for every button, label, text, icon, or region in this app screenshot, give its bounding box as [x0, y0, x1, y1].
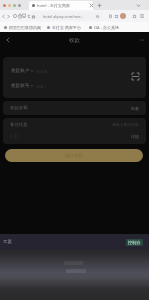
button[interactable]: 确认收款 [5, 149, 143, 162]
button[interactable]: Downloads [21, 13, 27, 19]
staticText: 元素 [3, 239, 12, 245]
staticText: 收款金额 [10, 105, 28, 111]
button[interactable]: Apps [131, 13, 137, 19]
staticText: 阿里巴巴集团内网 [9, 25, 41, 30]
staticText: 0.00 [10, 133, 19, 139]
button[interactable]: Tab list [136, 3, 141, 8]
button[interactable]: Extensions [113, 13, 119, 19]
staticText: * [30, 84, 33, 89]
button[interactable]: 备注信息 [3, 118, 146, 144]
staticText: 收款账户 [11, 68, 30, 74]
staticText: 请输入备注信息 [112, 122, 139, 127]
button[interactable]: Home [17, 13, 23, 19]
button[interactable]: Reload [12, 13, 18, 19]
staticText: 批量 [131, 106, 139, 111]
button[interactable]: More options [137, 35, 147, 45]
staticText: hotel.alipay.com/mer... [43, 14, 84, 19]
staticText: 控制台 [128, 240, 141, 245]
button[interactable]: hotel.alipay.com/mer... [30, 12, 102, 20]
staticText: 收款账号 [11, 83, 30, 89]
staticText: * [30, 69, 33, 74]
button[interactable]: OA - 办公系统 [87, 25, 121, 30]
staticText: 支付宝·商家平台 [52, 25, 82, 30]
button[interactable]: hotel - 支付宝商家 [29, 1, 93, 10]
staticText: 备注信息 [10, 122, 28, 128]
staticText: 请输入 [36, 84, 48, 89]
button[interactable]: Share [107, 13, 113, 19]
button[interactable]: 阿里巴巴集团内网 [2, 25, 43, 30]
staticText: 详情 [131, 134, 139, 139]
button[interactable]: 收款金额 [3, 101, 146, 115]
button[interactable]: Scan code [129, 70, 141, 82]
button[interactable]: Split view [26, 13, 32, 19]
button[interactable]: 控制台 [128, 240, 141, 245]
button[interactable]: Forward [5, 13, 11, 19]
staticText: 请选择 [36, 69, 48, 74]
button[interactable]: New tab [97, 3, 102, 8]
button[interactable]: Close tab [89, 3, 94, 8]
staticText: OA - 办公系统 [94, 25, 119, 30]
staticText: 收款 [69, 37, 80, 44]
button[interactable]: Bookmark this tab [94, 13, 100, 19]
button[interactable]: Menu [139, 13, 145, 19]
staticText: hotel - 支付宝商家 [37, 3, 70, 8]
button[interactable]: Back [3, 35, 13, 45]
button[interactable]: 收款账号 [11, 83, 48, 89]
staticText: 确认收款 [65, 153, 84, 159]
button[interactable]: 支付宝·商家平台 [45, 25, 84, 30]
button[interactable]: Back [0, 13, 6, 19]
button[interactable]: Profile [120, 13, 126, 19]
button[interactable]: 收款账户 [11, 68, 48, 74]
